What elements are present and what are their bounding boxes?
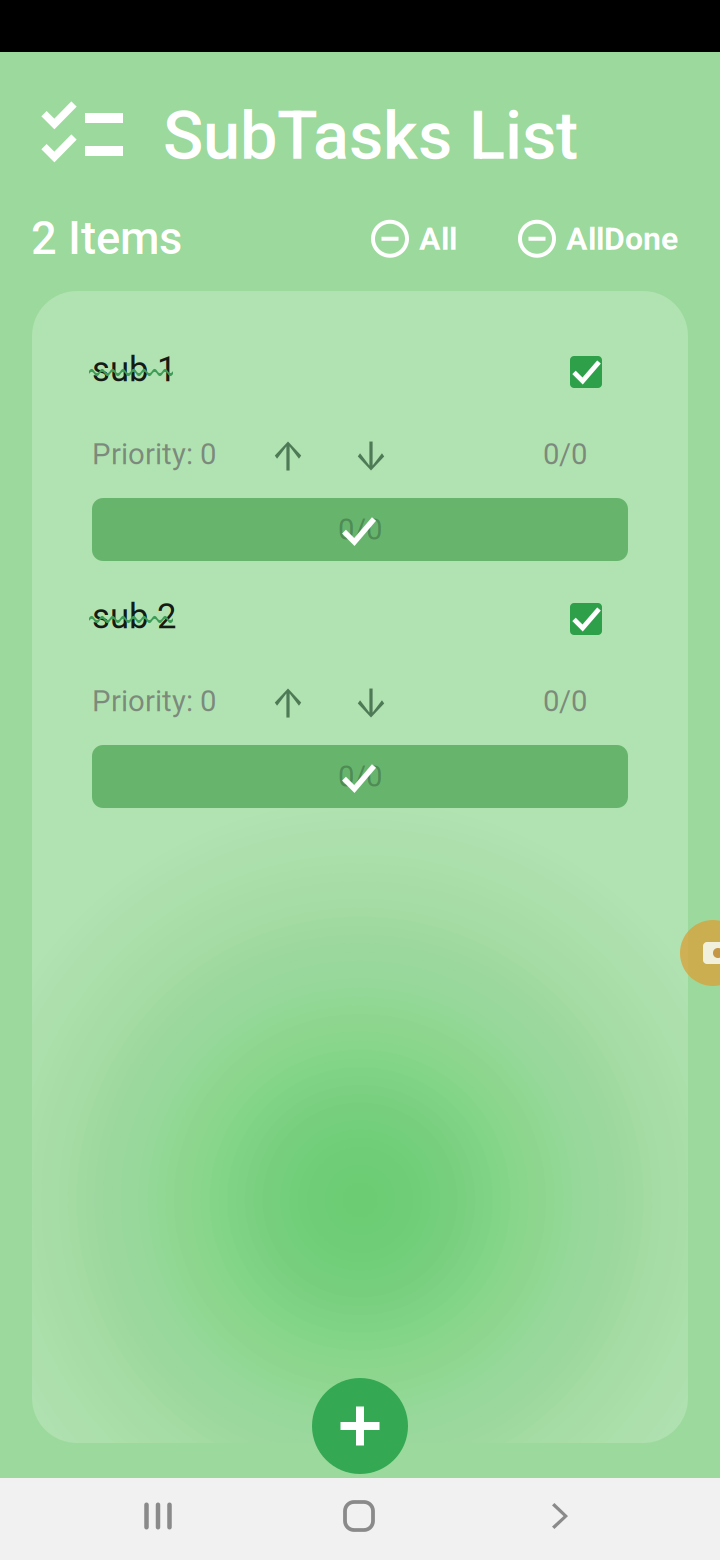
staticText: 0/0: [543, 437, 587, 471]
staticText: 2 Items: [31, 212, 182, 265]
staticText: AllDone: [566, 220, 678, 257]
button[interactable]: Sub task progress: [92, 498, 628, 561]
staticText: 0/0: [338, 512, 382, 547]
button[interactable]: Lower priority: [343, 428, 399, 484]
staticText: All: [419, 220, 457, 257]
staticText: sub 1: [92, 349, 176, 390]
button[interactable]: Lower priority: [343, 675, 399, 731]
button[interactable]: Back: [519, 1475, 601, 1557]
staticText: sub 2: [92, 596, 176, 637]
button[interactable]: sub 2: [92, 596, 392, 642]
staticText: Priority: 0: [92, 437, 216, 471]
staticText: 0/0: [338, 759, 382, 794]
button[interactable]: All: [373, 208, 457, 269]
button[interactable]: Raise priority: [260, 428, 316, 484]
button[interactable]: Sub task progress: [92, 745, 628, 808]
button[interactable]: Mark sub 2 as done: [558, 591, 614, 647]
button[interactable]: Mark sub 1 as done: [558, 344, 614, 400]
button[interactable]: Home: [318, 1475, 400, 1557]
staticText: SubTasks List: [163, 97, 578, 175]
button[interactable]: sub 1: [92, 349, 392, 395]
staticText: 0/0: [543, 684, 587, 718]
button[interactable]: AllDone: [520, 208, 678, 269]
button[interactable]: Add sub task: [312, 1378, 408, 1474]
staticText: Priority: 0: [92, 684, 216, 718]
button[interactable]: Recent apps: [117, 1475, 199, 1557]
button[interactable]: Raise priority: [260, 675, 316, 731]
